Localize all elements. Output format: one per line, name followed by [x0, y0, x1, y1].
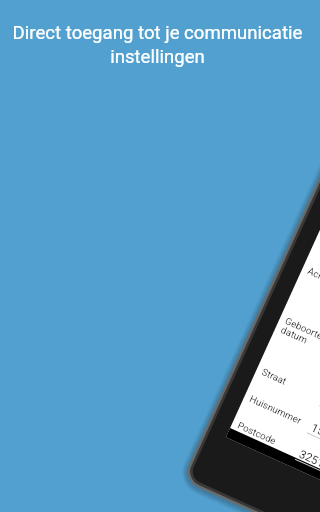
staticText: Direct toegang tot je communicatie inste… [0, 22, 315, 68]
